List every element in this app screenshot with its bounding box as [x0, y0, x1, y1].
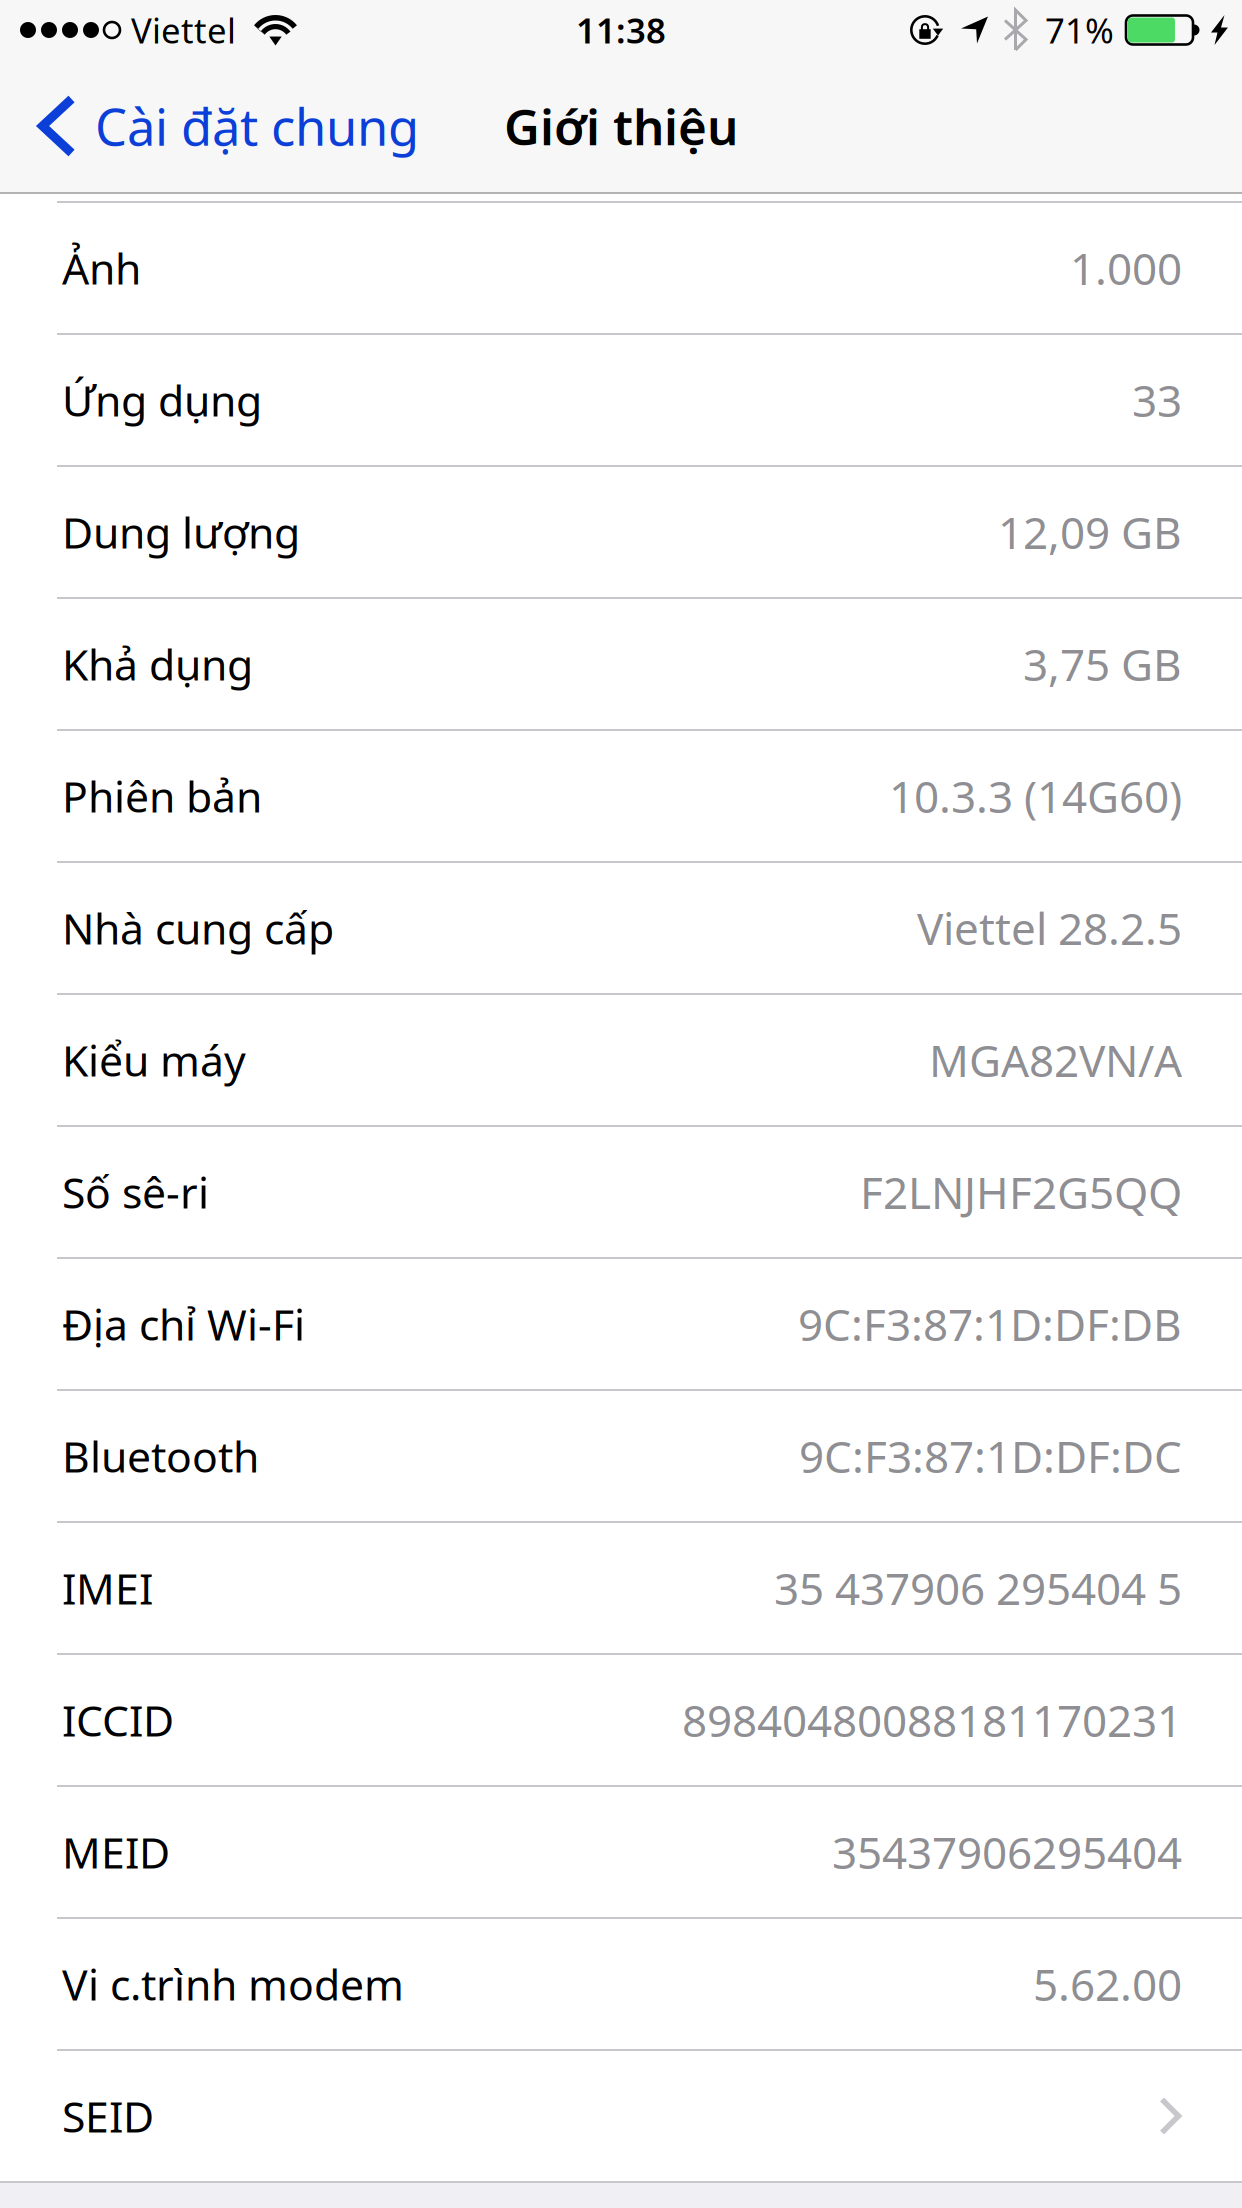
button[interactable]: MEID [0, 1787, 1242, 1919]
button[interactable]: Nhà cung cấp [0, 863, 1242, 995]
staticText: 89840480088181170231 [682, 1691, 1182, 1749]
button[interactable]: Khả dụng [0, 599, 1242, 731]
button[interactable]: Số sê-ri [0, 1127, 1242, 1259]
staticText: 12,09 GB [998, 503, 1182, 561]
staticText: IMEI [62, 1560, 153, 1616]
staticText: F2LNJHF2G5QQ [860, 1163, 1182, 1221]
staticText: 11:38 [576, 7, 666, 53]
staticText: Dung lượng [62, 504, 300, 560]
staticText: ICCID [62, 1692, 174, 1748]
button[interactable]: Địa chỉ Wi-Fi [0, 1259, 1242, 1391]
staticText: 33 [1132, 371, 1182, 429]
staticText: 35437906295404 [832, 1823, 1182, 1881]
staticText: SEID [62, 2088, 154, 2144]
button[interactable]: SEID [0, 2051, 1242, 2181]
staticText: Ứng dụng [62, 372, 262, 428]
staticText: 3,75 GB [1023, 635, 1182, 693]
staticText: 10.3.3 (14G60) [889, 767, 1182, 825]
button[interactable]: ICCID [0, 1655, 1242, 1787]
staticText: Bluetooth [62, 1428, 259, 1484]
staticText: Kiểu máy [62, 1032, 246, 1088]
staticText: MGA82VN/A [929, 1031, 1182, 1089]
staticText: Nhà cung cấp [62, 900, 334, 956]
staticText: Phiên bản [62, 768, 262, 824]
staticText: 9C:F3:87:1D:DF:DC [799, 1427, 1182, 1485]
button[interactable]: IMEI [0, 1523, 1242, 1655]
staticText: Số sê-ri [62, 1164, 209, 1220]
button[interactable]: Phiên bản [0, 731, 1242, 863]
staticText: Cài đặt chung [95, 92, 419, 160]
staticText: Địa chỉ Wi-Fi [62, 1296, 305, 1352]
staticText: Giới thiệu [504, 93, 738, 159]
staticText: 5.62.00 [1033, 1955, 1182, 2013]
staticText: 35 437906 295404 5 [774, 1559, 1182, 1617]
staticText: Viettel [131, 7, 236, 53]
button[interactable]: Ứng dụng [0, 335, 1242, 467]
staticText: Khả dụng [62, 636, 253, 692]
button[interactable]: Bluetooth [0, 1391, 1242, 1523]
button[interactable]: Cài đặt chung [0, 60, 443, 192]
staticText: Viettel 28.2.5 [917, 899, 1182, 957]
staticText: 9C:F3:87:1D:DF:DB [798, 1295, 1182, 1353]
button[interactable]: Dung lượng [0, 467, 1242, 599]
button[interactable]: Vi c.trình modem [0, 1919, 1242, 2051]
button[interactable]: Kiểu máy [0, 995, 1242, 1127]
staticText: 1.000 [1070, 239, 1182, 297]
staticText: Ảnh [62, 240, 141, 296]
staticText: MEID [62, 1824, 170, 1880]
button[interactable]: Ảnh [0, 203, 1242, 335]
staticText: 71% [1045, 7, 1114, 53]
staticText: Vi c.trình modem [62, 1956, 404, 2012]
